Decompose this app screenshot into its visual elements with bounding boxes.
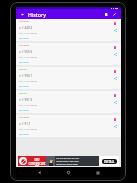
button[interactable]: Receipt bbox=[113, 69, 117, 73]
staticText: ₹ 440.2 bbox=[22, 26, 33, 29]
button[interactable]: Receipt bbox=[113, 21, 117, 25]
button[interactable]: Back bbox=[19, 11, 26, 18]
button[interactable]: Home bbox=[65, 169, 72, 176]
staticText: Deposit bbox=[19, 68, 27, 71]
staticText: ISO CERTIFICATION SERVICES bbox=[28, 158, 46, 166]
staticText: INSTALL bbox=[104, 160, 115, 164]
staticText: See Details bbox=[19, 85, 29, 87]
staticText: Withdraw bbox=[19, 20, 29, 23]
staticText: See Details bbox=[19, 61, 29, 63]
staticText: ₹ 91.1 bbox=[22, 122, 31, 125]
staticText: See Details bbox=[19, 109, 29, 111]
button[interactable]: Statement bbox=[103, 11, 110, 18]
button[interactable]: Receipt bbox=[113, 45, 117, 49]
button[interactable]: ISO CERTIFICATION SERVICES bbox=[18, 156, 119, 166]
staticText: See Details bbox=[19, 133, 29, 135]
button[interactable]: Share bbox=[113, 100, 117, 104]
button[interactable]: Back bbox=[36, 169, 43, 176]
staticText: 2021-11-08 10:06 AM bbox=[19, 104, 38, 106]
button[interactable]: Edit bbox=[111, 11, 118, 18]
button[interactable]: Recents bbox=[94, 169, 101, 176]
staticText: See Details bbox=[19, 37, 29, 39]
staticText: We are looking for ISO certification? Ge… bbox=[56, 157, 80, 166]
button[interactable]: Share bbox=[113, 52, 117, 56]
button[interactable]: Share bbox=[113, 76, 117, 80]
staticText: 2021-11-08 10:06 AM bbox=[19, 128, 38, 130]
staticText: 2021-11-08 10:06 AM bbox=[19, 56, 38, 58]
staticText: Withdraw bbox=[19, 116, 29, 119]
button[interactable]: Share bbox=[113, 124, 117, 128]
staticText: 2021-11-08 10:06 AM bbox=[19, 80, 38, 82]
button[interactable]: Receipt bbox=[113, 93, 117, 97]
staticText: ₹ 555.5 bbox=[22, 50, 33, 53]
staticText: History bbox=[28, 11, 46, 18]
button[interactable]: Withdraw bbox=[16, 115, 121, 137]
button[interactable]: Deposit bbox=[16, 67, 121, 89]
button[interactable]: Withdraw bbox=[16, 43, 121, 65]
button[interactable]: Share bbox=[113, 28, 117, 32]
button[interactable]: Deposit bbox=[16, 91, 121, 113]
staticText: Withdraw bbox=[19, 44, 29, 47]
button[interactable]: Withdraw bbox=[16, 19, 121, 41]
staticText: 2021-11-08 10:06 AM bbox=[19, 32, 38, 34]
button[interactable]: Receipt bbox=[113, 117, 117, 121]
button[interactable]: INSTALL bbox=[102, 159, 117, 164]
staticText: Deposit bbox=[19, 92, 27, 95]
staticText: ₹ 990.1 bbox=[22, 74, 33, 77]
staticText: ₹ 991.5 bbox=[22, 98, 33, 101]
